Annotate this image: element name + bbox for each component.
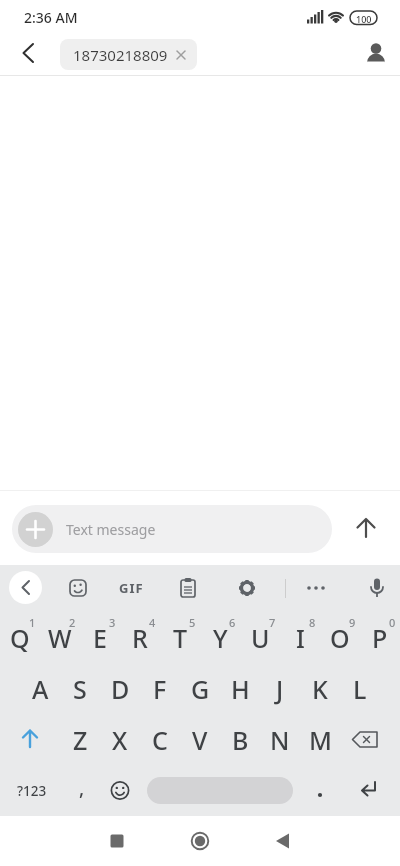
staticText: L (353, 672, 367, 706)
staticText: Text message (66, 520, 156, 539)
staticText: M (309, 723, 332, 757)
staticText: 1 (29, 615, 36, 630)
button[interactable]: R (120, 612, 160, 663)
button[interactable] (140, 765, 300, 816)
staticText: O (330, 621, 350, 655)
staticText: W (48, 621, 72, 655)
button[interactable] (112, 565, 156, 612)
button[interactable] (340, 714, 400, 765)
button[interactable]: Z (60, 714, 100, 765)
button[interactable] (0, 714, 60, 765)
button[interactable]: C (140, 714, 180, 765)
button[interactable]: M (300, 714, 340, 765)
button[interactable] (9, 571, 42, 604)
button[interactable] (180, 821, 220, 861)
button[interactable] (296, 567, 336, 607)
staticText: 8 (309, 615, 316, 630)
button[interactable]: W (40, 612, 80, 663)
staticText: R (132, 621, 148, 655)
staticText: 5 (189, 615, 196, 630)
button[interactable]: , (64, 765, 100, 816)
button[interactable]: P (360, 612, 400, 663)
button[interactable]: D (100, 663, 140, 714)
button[interactable]: X (100, 714, 140, 765)
staticText: GIF (119, 579, 144, 597)
button[interactable]: K (300, 663, 340, 714)
staticText: P (372, 621, 388, 655)
button[interactable]: I (280, 612, 320, 663)
button[interactable]: V (180, 714, 220, 765)
button[interactable] (0, 32, 44, 76)
staticText: 7 (269, 615, 276, 630)
staticText: 6 (229, 615, 236, 630)
button[interactable]: L (340, 663, 380, 714)
staticText: K (312, 672, 328, 706)
button[interactable] (357, 567, 397, 607)
staticText: A (32, 672, 49, 706)
staticText: X (112, 723, 128, 757)
staticText: I (296, 621, 305, 655)
staticText: 2:36 AM (24, 8, 78, 27)
button[interactable] (356, 32, 400, 76)
button[interactable]: T (160, 612, 200, 663)
staticText: 0 (389, 615, 396, 630)
staticText: 4 (149, 615, 156, 630)
button[interactable]: J (260, 663, 300, 714)
button[interactable]: ?123 (0, 765, 64, 816)
staticText: ?123 (17, 782, 47, 800)
staticText: J (276, 672, 284, 706)
button[interactable]: Q (0, 612, 40, 663)
staticText: 2 (69, 615, 76, 630)
button[interactable]: Text message (12, 505, 332, 553)
staticText: Q (10, 621, 30, 655)
button[interactable]: Y (200, 612, 240, 663)
staticText: N (270, 723, 290, 757)
button[interactable]: G (180, 663, 220, 714)
staticText: 9 (349, 615, 356, 630)
button[interactable] (344, 506, 388, 550)
button[interactable] (97, 821, 137, 861)
button[interactable]: E (80, 612, 120, 663)
staticText: G (191, 672, 210, 706)
staticText: 18730218809 (73, 45, 168, 65)
staticText: E (93, 621, 107, 655)
button[interactable]: B (220, 714, 260, 765)
staticText: H (231, 672, 250, 706)
staticText: Z (73, 723, 88, 757)
staticText: Y (213, 621, 228, 655)
staticText: C (152, 723, 168, 757)
staticText: , (79, 775, 85, 801)
button[interactable] (100, 765, 140, 816)
staticText: V (192, 723, 208, 757)
button[interactable]: F (140, 663, 180, 714)
button[interactable] (58, 567, 98, 607)
button[interactable] (168, 567, 208, 607)
staticText: B (232, 723, 249, 757)
staticText: D (111, 672, 130, 706)
staticText: S (73, 672, 87, 706)
button[interactable] (300, 765, 340, 816)
staticText: 3 (109, 615, 116, 630)
staticText: U (251, 621, 270, 655)
button[interactable]: U (240, 612, 280, 663)
button[interactable]: N (260, 714, 300, 765)
button[interactable]: S (60, 663, 100, 714)
button[interactable]: 18730218809 (60, 39, 197, 70)
staticText: 100 (356, 13, 372, 25)
button[interactable]: O (320, 612, 360, 663)
button[interactable] (340, 765, 400, 816)
button[interactable] (227, 567, 267, 607)
staticText: F (153, 672, 167, 706)
button[interactable]: A (20, 663, 60, 714)
button[interactable]: H (220, 663, 260, 714)
staticText: T (173, 621, 188, 655)
button[interactable] (263, 821, 303, 861)
